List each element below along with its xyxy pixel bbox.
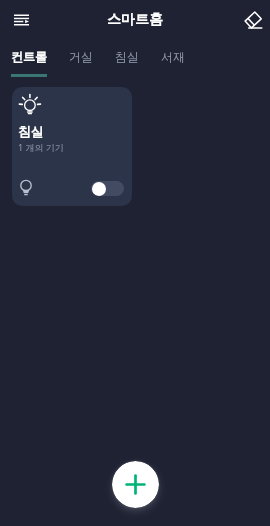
staticText: 스마트홈 (107, 11, 163, 29)
button[interactable]: Add device (112, 461, 159, 508)
button[interactable]: 거실 (58, 40, 104, 77)
staticText: 1 개의 기기 (18, 141, 64, 153)
staticText: 침실 (115, 49, 139, 64)
button[interactable]: 침실 (12, 87, 132, 206)
staticText: 컨트롤 (11, 49, 47, 64)
staticText: 서재 (161, 49, 185, 64)
staticText: 침실 (18, 124, 43, 140)
button[interactable]: 컨트롤 (0, 40, 58, 77)
staticText: 거실 (69, 49, 93, 64)
button[interactable]: Menu (7, 6, 35, 34)
button[interactable]: 침실 (104, 40, 150, 77)
button[interactable]: 서재 (150, 40, 196, 77)
button[interactable]: Erase (240, 7, 266, 33)
button[interactable]: Toggle light (91, 181, 124, 196)
